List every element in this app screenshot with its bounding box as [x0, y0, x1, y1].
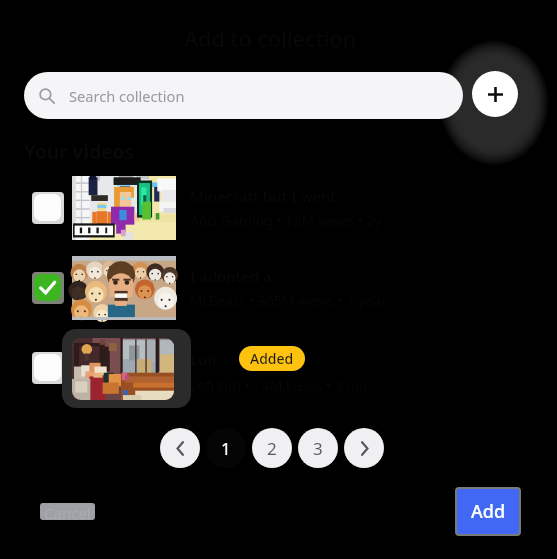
staticText: Lofi [190, 349, 217, 369]
button[interactable]: Minecraft but I went [0, 168, 557, 248]
staticText: 1 [221, 437, 231, 460]
button[interactable]: Lofi [0, 328, 557, 408]
button[interactable]: Add new collection [472, 71, 518, 117]
staticText: Added [250, 349, 294, 368]
button[interactable]: 1 [206, 428, 246, 468]
staticText: Cancel [44, 503, 91, 520]
button[interactable]: Add [455, 487, 521, 536]
button[interactable]: Search collection [24, 72, 463, 119]
staticText: Add [471, 499, 506, 524]
staticText: 2 [267, 437, 277, 460]
button[interactable]: 2 [252, 428, 292, 468]
button[interactable]: Cancel [40, 503, 95, 520]
button[interactable]: Previous page [160, 428, 200, 468]
button[interactable]: I adopted a [0, 248, 557, 328]
staticText: 3 [313, 437, 323, 460]
button[interactable]: 3 [298, 428, 338, 468]
staticText: Lofi Girl • 14M views • 3 mo [190, 376, 368, 395]
button[interactable]: Next page [344, 428, 384, 468]
staticText: Search collection [69, 86, 185, 106]
